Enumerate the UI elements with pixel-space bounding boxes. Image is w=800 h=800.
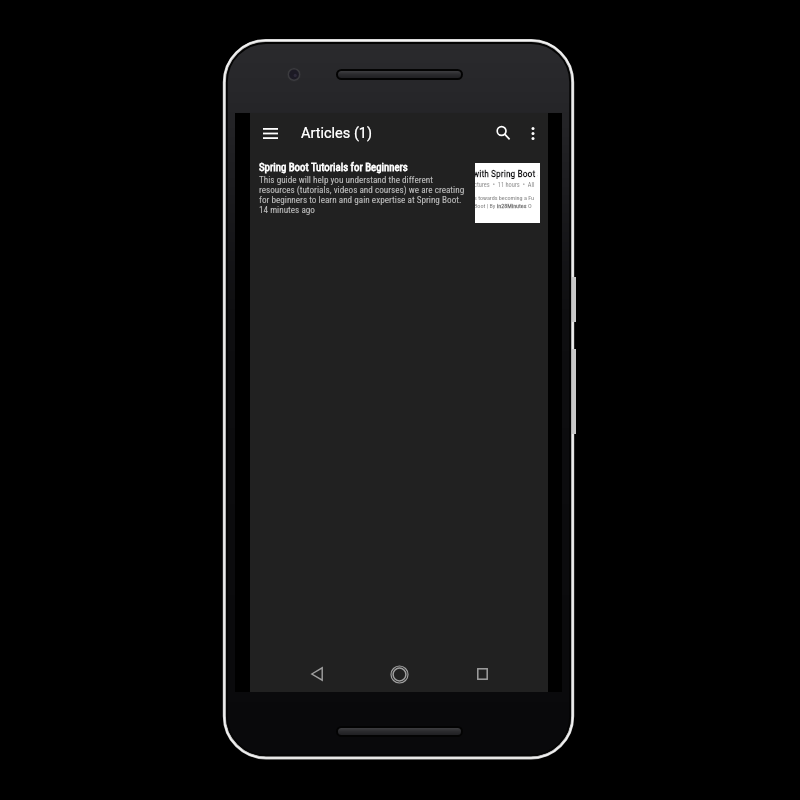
button[interactable]: More options xyxy=(517,113,548,154)
staticText: Articles (1) xyxy=(301,125,373,142)
button[interactable]: Spring Boot Tutorials for Beginners xyxy=(250,154,548,214)
button[interactable]: Open navigation drawer xyxy=(250,113,291,154)
staticText: This guide will help you understand the … xyxy=(259,174,468,205)
staticText: s towards becoming a Fu xyxy=(475,194,535,201)
button[interactable]: Search xyxy=(481,113,517,154)
staticText: Spring Boot Tutorials for Beginners xyxy=(259,161,468,174)
staticText: Boot | By in28Minutes O xyxy=(475,202,532,209)
staticText: with Spring Boot a xyxy=(475,168,538,179)
button[interactable]: Home xyxy=(377,653,421,695)
button[interactable]: Recent apps xyxy=(460,653,504,695)
button[interactable]: Back xyxy=(295,653,339,695)
staticText: 14 minutes ago xyxy=(259,204,315,215)
staticText: ctures • 11 hours • All xyxy=(475,181,535,189)
